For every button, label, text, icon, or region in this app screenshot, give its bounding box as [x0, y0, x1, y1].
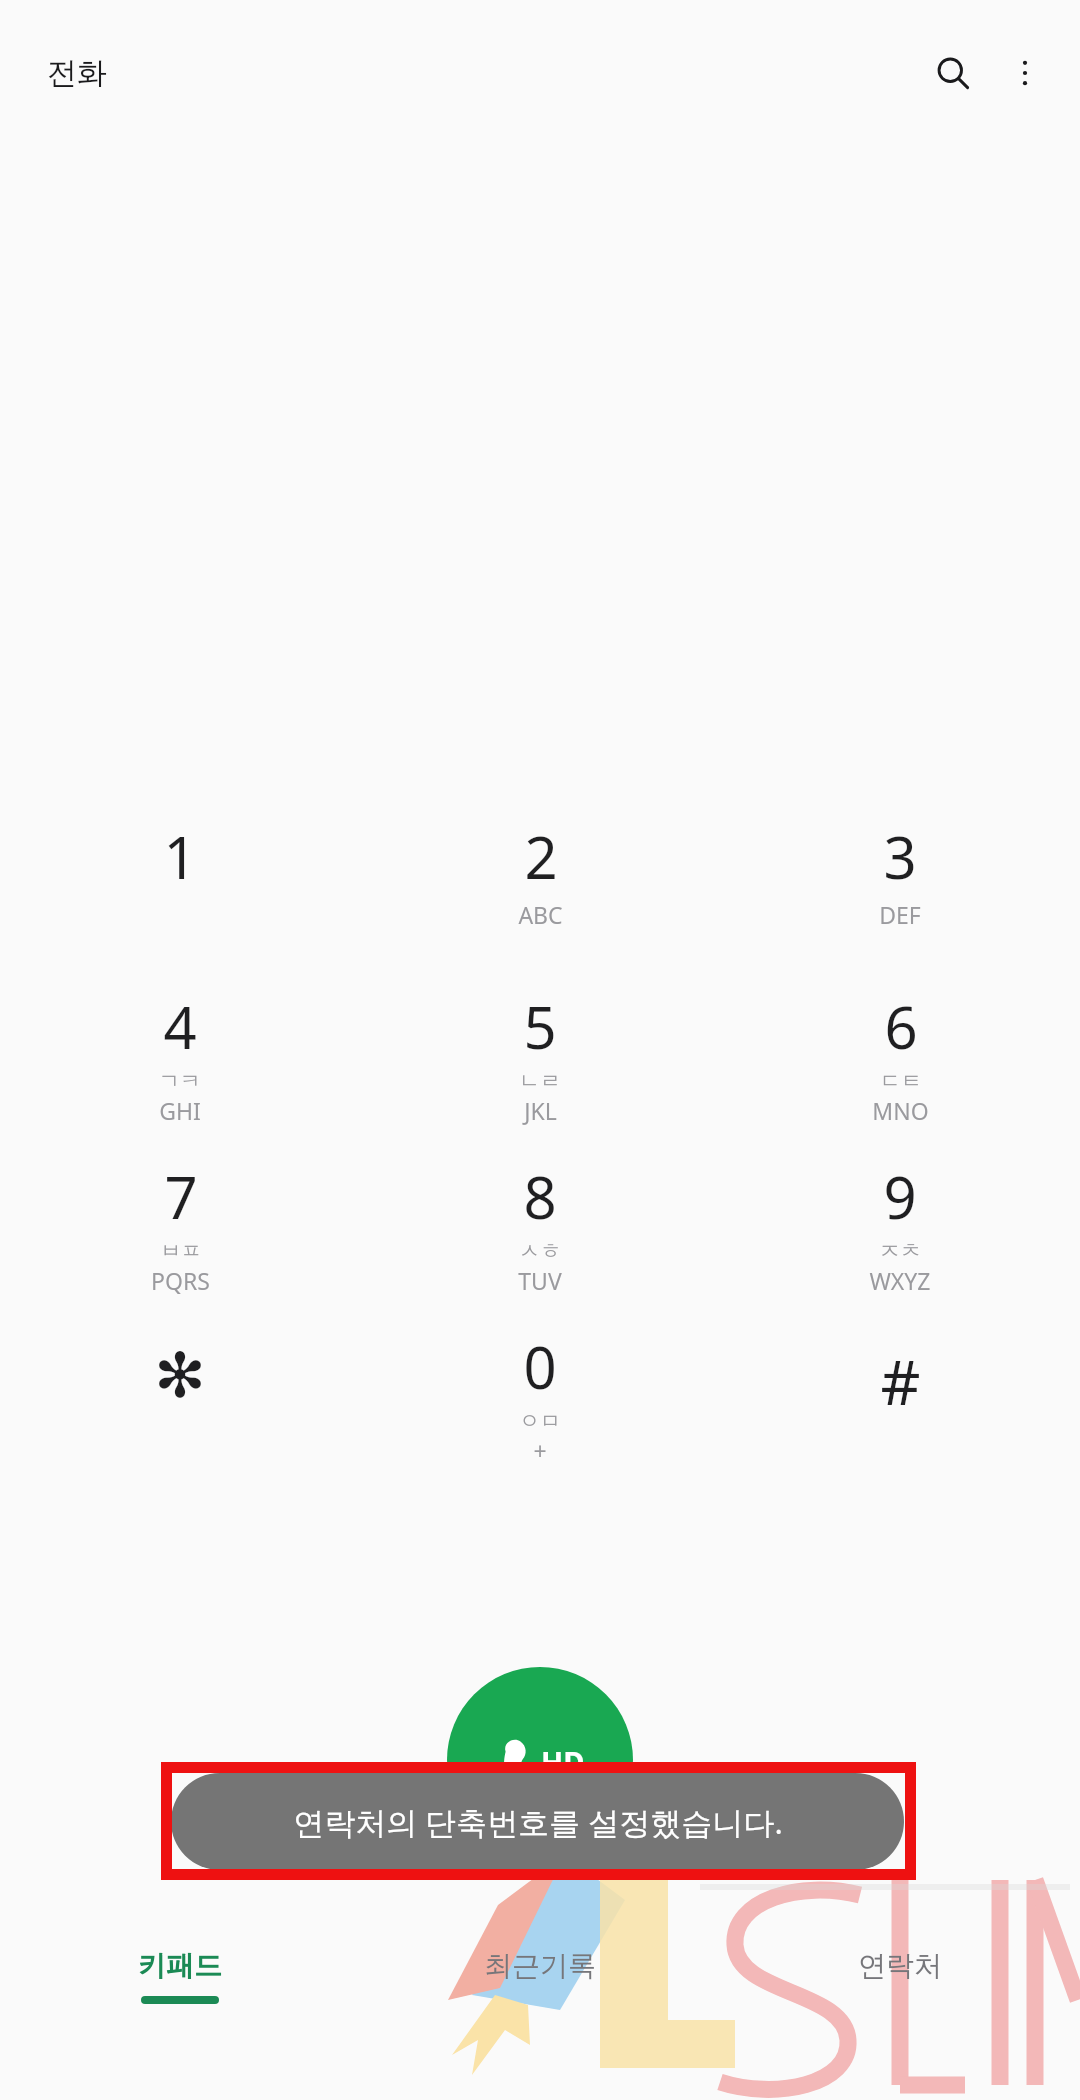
staticText: 6: [884, 987, 918, 1066]
staticText: MNO: [872, 1095, 929, 1126]
staticText: ✻: [154, 1339, 206, 1411]
staticText: 전화: [47, 54, 107, 92]
staticText: WXYZ: [869, 1265, 931, 1296]
staticText: DEF: [879, 899, 921, 930]
staticText: 연락처의 단축번호를 설정했습니다.: [293, 1801, 783, 1843]
staticText: 0: [523, 1327, 557, 1406]
staticText: 7: [164, 1157, 198, 1236]
button[interactable]: 6: [720, 985, 1080, 1155]
button[interactable]: 3: [720, 815, 1080, 985]
staticText: ㅇㅁ: [519, 1408, 561, 1434]
button[interactable]: More options: [994, 42, 1056, 104]
staticText: ㄴㄹ: [519, 1068, 561, 1094]
staticText: HD: [541, 1742, 585, 1781]
staticText: +: [533, 1435, 547, 1466]
staticText: ㅂㅍ: [160, 1238, 202, 1264]
staticText: ㄷㅌ: [880, 1068, 922, 1094]
button[interactable]: 키패드: [0, 1930, 360, 2070]
staticText: ABC: [518, 899, 563, 930]
button[interactable]: Call: [447, 1667, 633, 1853]
button[interactable]: 연락처: [720, 1930, 1080, 2070]
staticText: ㅈㅊ: [879, 1238, 921, 1264]
staticText: 최근기록: [484, 1948, 596, 1983]
button[interactable]: #: [720, 1325, 1080, 1495]
staticText: ㅅㅎ: [519, 1238, 561, 1264]
button[interactable]: Search: [922, 42, 984, 104]
button[interactable]: 8: [360, 1155, 720, 1325]
staticText: TUV: [518, 1265, 562, 1296]
staticText: 3: [883, 817, 917, 896]
staticText: ㄱㅋ: [159, 1068, 201, 1094]
staticText: 4: [163, 987, 197, 1066]
button[interactable]: 5: [360, 985, 720, 1155]
button[interactable]: 4: [0, 985, 360, 1155]
staticText: 5: [523, 987, 557, 1066]
staticText: GHI: [159, 1095, 201, 1126]
staticText: 키패드: [138, 1948, 222, 1983]
staticText: #: [880, 1339, 921, 1423]
staticText: PQRS: [151, 1265, 210, 1296]
button[interactable]: 2: [360, 815, 720, 985]
staticText: 2: [524, 817, 558, 896]
button[interactable]: ✻: [0, 1325, 360, 1495]
button[interactable]: 9: [720, 1155, 1080, 1325]
staticText: 1: [163, 817, 197, 896]
staticText: 9: [883, 1157, 917, 1236]
button[interactable]: 최근기록: [360, 1930, 720, 2070]
staticText: 연락처: [858, 1948, 942, 1983]
button[interactable]: 0: [360, 1325, 720, 1495]
button[interactable]: 7: [0, 1155, 360, 1325]
staticText: JKL: [524, 1095, 557, 1126]
button[interactable]: 1: [0, 815, 360, 985]
staticText: 8: [523, 1157, 557, 1236]
